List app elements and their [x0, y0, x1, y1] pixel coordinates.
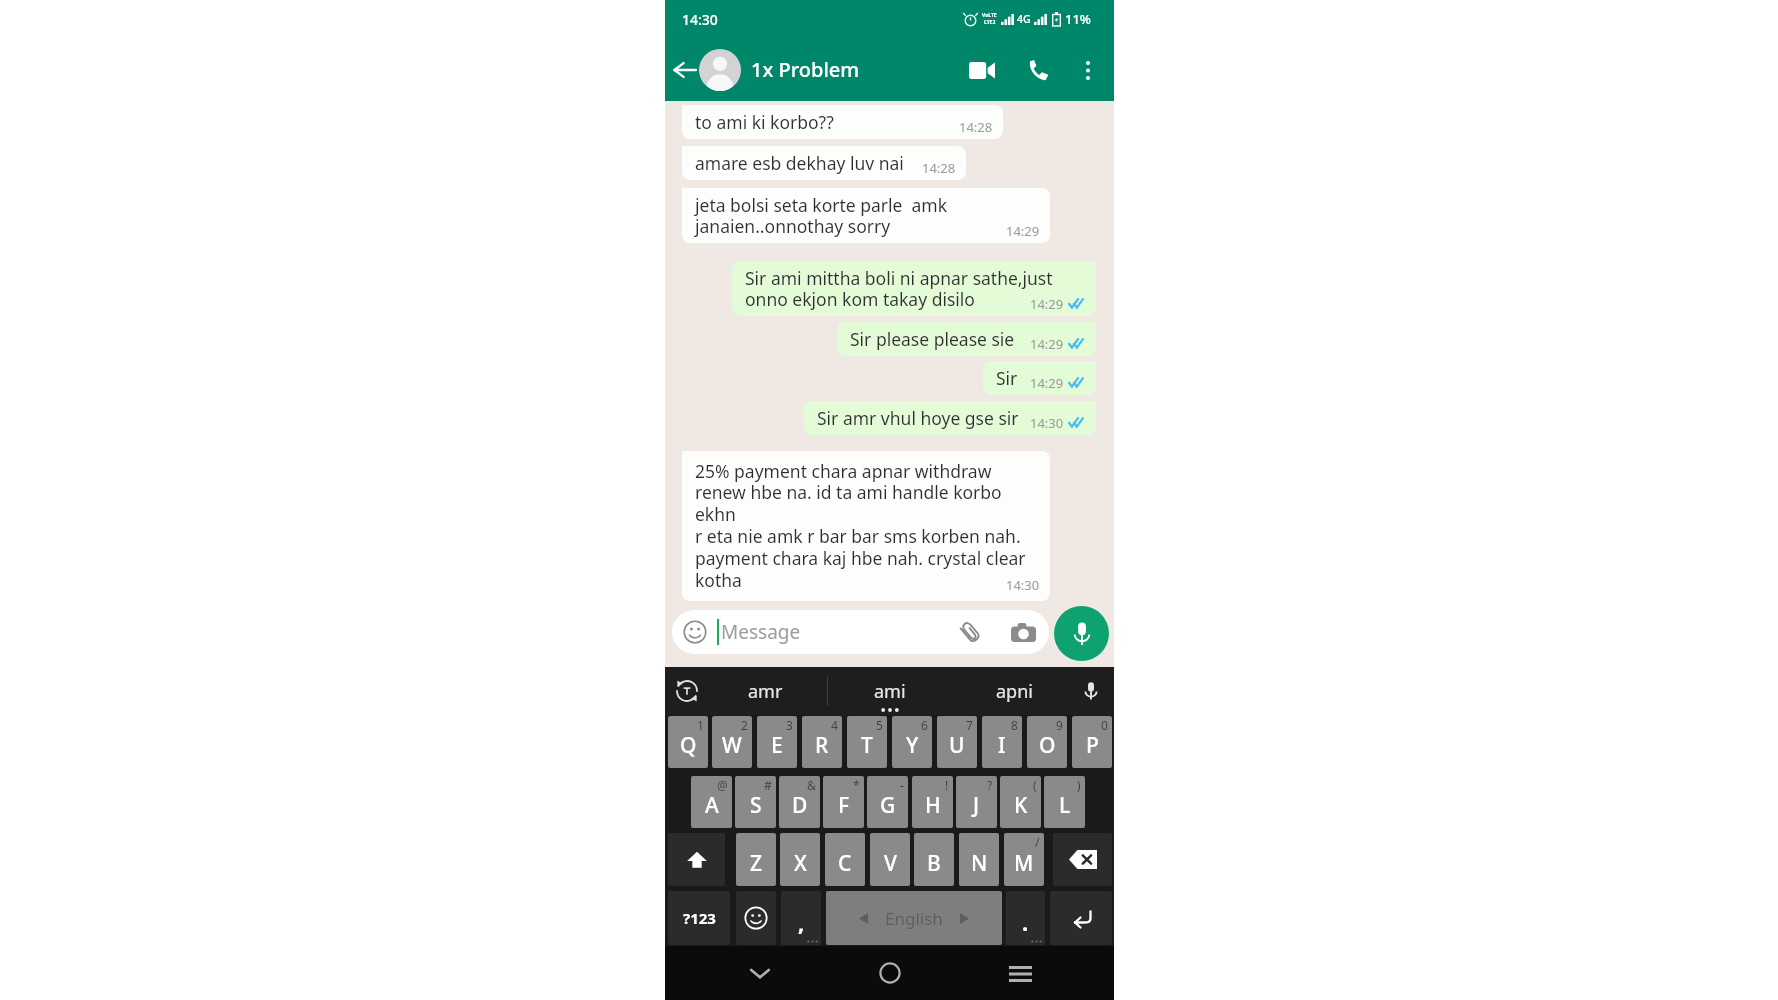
button[interactable]: (: [1000, 776, 1041, 828]
button[interactable]: apni: [952, 667, 1077, 715]
button[interactable]: Sir ami mittha boli ni apnar sathe,just …: [732, 261, 1096, 316]
button[interactable]: 8: [982, 716, 1022, 768]
staticText: F: [838, 791, 850, 820]
button[interactable]: Video call: [962, 50, 1002, 90]
button[interactable]: @: [691, 776, 732, 828]
staticText: ?123: [683, 908, 716, 928]
button[interactable]: 5: [847, 716, 887, 768]
button[interactable]: 0: [1072, 716, 1112, 768]
staticText: 14:29: [1030, 295, 1064, 313]
button[interactable]: #: [735, 776, 776, 828]
staticText: &: [807, 777, 816, 793]
button[interactable]: Shift: [668, 833, 725, 886]
button[interactable]: ): [1044, 776, 1085, 828]
button[interactable]: Backspace: [1053, 833, 1112, 886]
staticText: #: [764, 777, 772, 793]
button[interactable]: Home: [867, 950, 913, 996]
staticText: G: [880, 791, 896, 820]
staticText: jeta bolsi seta korte parle amk janaien.…: [695, 193, 948, 238]
staticText: amare esb dekhay luv nai: [695, 151, 932, 175]
staticText: 14:29: [1006, 222, 1040, 240]
staticText: 14:29: [1030, 335, 1064, 353]
button[interactable]: 7: [937, 716, 977, 768]
button[interactable]: Attach: [956, 618, 984, 646]
staticText: 14:29: [1030, 374, 1064, 392]
staticText: ,: [798, 907, 805, 937]
button[interactable]: !: [912, 776, 953, 828]
staticText: 1: [697, 717, 704, 733]
button[interactable]: amr: [703, 667, 827, 715]
button[interactable]: X: [780, 833, 820, 886]
button[interactable]: to ami ki korbo??: [682, 105, 1003, 139]
staticText: ?: [987, 777, 993, 793]
staticText: V: [884, 849, 897, 878]
staticText: 4: [831, 717, 838, 733]
staticText: /: [1035, 834, 1040, 850]
button[interactable]: 25% payment chara apnar withdraw renew h…: [682, 451, 1050, 601]
staticText: 3: [786, 717, 793, 733]
button[interactable]: C: [825, 833, 865, 886]
staticText: H: [925, 791, 941, 820]
staticText: I: [998, 731, 1006, 760]
button[interactable]: Hide keyboard: [737, 950, 783, 996]
button[interactable]: Camera: [1009, 618, 1037, 646]
button[interactable]: Message: [672, 610, 1049, 654]
staticText: 9: [1056, 717, 1063, 733]
staticText: English: [885, 907, 943, 930]
button[interactable]: 9: [1027, 716, 1067, 768]
button[interactable]: 4: [802, 716, 842, 768]
staticText: Z: [750, 849, 763, 878]
button[interactable]: Voice input: [1069, 669, 1113, 713]
button[interactable]: &: [779, 776, 820, 828]
staticText: ami: [874, 679, 906, 704]
staticText: 7: [966, 717, 973, 733]
button[interactable]: Emoji: [736, 891, 776, 945]
staticText: Message: [721, 619, 801, 645]
staticText: P: [1086, 731, 1099, 760]
button[interactable]: Back: [666, 51, 704, 89]
button[interactable]: Translate: [665, 669, 709, 713]
button[interactable]: Sir please please sie: [837, 322, 1096, 356]
staticText: 5: [876, 717, 883, 733]
staticText: .: [1022, 907, 1029, 937]
button[interactable]: 3: [757, 716, 797, 768]
staticText: 14:28: [959, 118, 993, 136]
staticText: to ami ki korbo??: [695, 110, 880, 134]
button[interactable]: 2: [712, 716, 752, 768]
staticText: apni: [996, 679, 1033, 704]
button[interactable]: V: [870, 833, 910, 886]
staticText: -: [900, 777, 904, 793]
button[interactable]: amare esb dekhay luv nai: [682, 146, 966, 180]
staticText: K: [1014, 791, 1028, 820]
staticText: M: [1014, 849, 1034, 878]
staticText: B: [927, 849, 941, 878]
staticText: Sir please please sie: [850, 327, 1047, 351]
staticText: X: [794, 849, 807, 878]
button[interactable]: ?123: [668, 891, 730, 945]
button[interactable]: Voice message: [1054, 606, 1109, 661]
staticText: 11%: [1065, 10, 1091, 28]
button[interactable]: .: [1006, 891, 1045, 945]
staticText: R: [815, 731, 829, 760]
button[interactable]: B: [914, 833, 954, 886]
button[interactable]: ?: [956, 776, 997, 828]
button[interactable]: /: [1004, 833, 1044, 886]
button[interactable]: ami: [827, 667, 952, 715]
button[interactable]: Sir amr vhul hoye gse sir: [804, 401, 1096, 435]
button[interactable]: -: [867, 776, 908, 828]
staticText: 4G: [1017, 12, 1031, 26]
button[interactable]: Call: [1018, 50, 1058, 90]
button[interactable]: Recent apps: [997, 950, 1043, 996]
button[interactable]: jeta bolsi seta korte parle amk janaien.…: [682, 188, 1050, 243]
button[interactable]: *: [823, 776, 864, 828]
button[interactable]: ,: [781, 891, 821, 945]
button[interactable]: 6: [892, 716, 932, 768]
button[interactable]: Z: [736, 833, 776, 886]
button[interactable]: 1: [668, 716, 708, 768]
button[interactable]: Enter: [1050, 891, 1112, 945]
button[interactable]: Sir: [983, 361, 1096, 395]
staticText: U: [949, 731, 965, 760]
button[interactable]: English: [826, 891, 1002, 945]
button[interactable]: More options: [1071, 53, 1105, 87]
button[interactable]: N: [959, 833, 999, 886]
